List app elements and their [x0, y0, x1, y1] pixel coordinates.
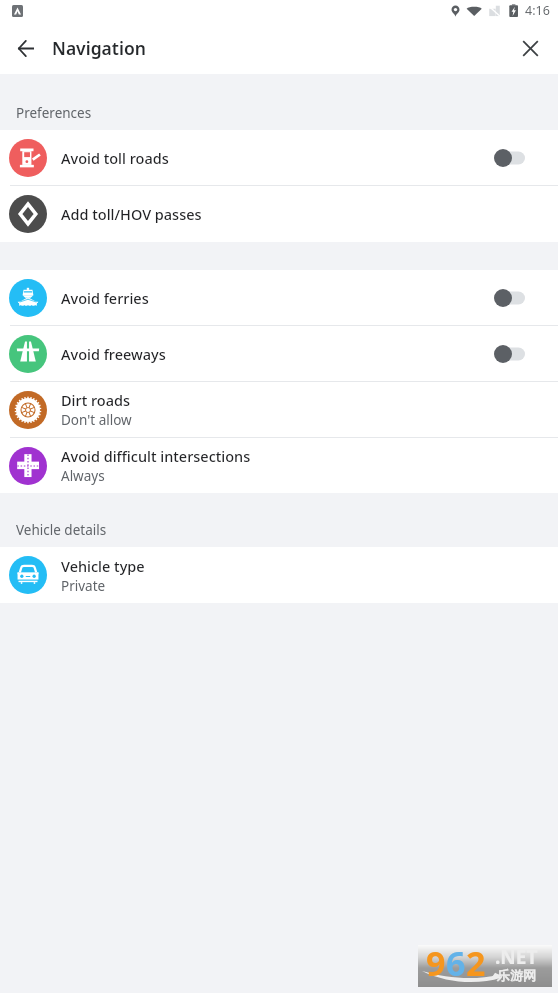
button[interactable]: Avoid freeways [0, 326, 558, 381]
staticText: Private [61, 577, 106, 595]
staticText: 2 [466, 940, 486, 982]
staticText: Don't allow [61, 411, 132, 429]
button[interactable]: Avoid toll roads [0, 130, 558, 185]
button[interactable]: Close [512, 30, 548, 66]
button[interactable]: Avoid ferries switch [485, 274, 533, 322]
button[interactable]: Avoid ferries [0, 270, 558, 325]
staticText: .NET [495, 944, 538, 970]
staticText: 9 [426, 940, 446, 982]
button[interactable]: Avoid freeways switch [485, 330, 533, 378]
staticText: Vehicle details [16, 521, 107, 539]
staticText: Dirt roads [61, 390, 131, 410]
staticText: 乐游网 [497, 967, 536, 983]
staticText: Avoid ferries [61, 288, 149, 308]
staticText: Always [61, 467, 105, 485]
staticText: Avoid freeways [61, 344, 166, 364]
button[interactable]: Dirt roads [0, 382, 558, 437]
staticText: Avoid toll roads [61, 148, 169, 168]
staticText: Vehicle type [61, 556, 145, 576]
button[interactable]: Avoid difficult intersections [0, 438, 558, 493]
staticText: Avoid difficult intersections [61, 446, 251, 466]
button[interactable]: Add toll/HOV passes [0, 186, 558, 242]
staticText: Navigation [52, 36, 146, 60]
staticText: Add toll/HOV passes [61, 204, 202, 224]
staticText: Preferences [16, 104, 92, 122]
button[interactable]: Vehicle type [0, 547, 558, 603]
staticText: 6 [446, 940, 466, 982]
staticText: 4:16 [525, 2, 550, 19]
button[interactable]: Avoid toll roads switch [485, 134, 533, 182]
button[interactable]: Back [8, 30, 44, 66]
